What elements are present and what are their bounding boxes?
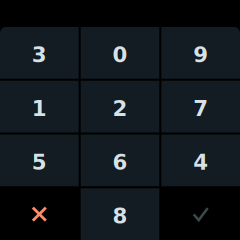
button[interactable]: 5 [0, 134, 79, 186]
staticText: 6 [112, 150, 127, 175]
button[interactable]: 1 [0, 81, 79, 133]
staticText: 2 [112, 96, 127, 121]
button[interactable]: 2 [81, 81, 159, 133]
staticText: 7 [193, 96, 208, 121]
button[interactable]: 8 [81, 188, 159, 240]
button[interactable]: Delete [0, 188, 79, 240]
button[interactable]: 6 [81, 134, 159, 186]
staticText: 0 [112, 42, 127, 67]
staticText: 4 [193, 150, 208, 175]
staticText: 9 [193, 42, 208, 67]
staticText: 8 [112, 204, 127, 228]
button[interactable]: 7 [161, 81, 240, 133]
button[interactable]: 4 [161, 134, 240, 186]
staticText: 3 [32, 42, 47, 67]
button[interactable]: 0 [81, 27, 159, 79]
button[interactable]: Confirm [161, 188, 240, 240]
staticText: 1 [32, 96, 47, 121]
button[interactable]: 3 [0, 27, 79, 79]
staticText: 5 [32, 150, 47, 175]
button[interactable]: 9 [161, 27, 240, 79]
